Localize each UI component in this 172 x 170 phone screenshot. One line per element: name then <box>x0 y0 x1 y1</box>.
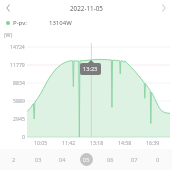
button[interactable]: 06 <box>98 149 122 170</box>
staticText: (W) <box>4 31 13 38</box>
staticText: 10:05 <box>34 139 48 146</box>
staticText: 14724 <box>10 43 25 50</box>
staticText: P-pv: <box>13 19 27 27</box>
staticText: 2945 <box>13 115 25 122</box>
button[interactable]: 05 <box>74 149 98 170</box>
staticText: 05 <box>83 156 90 164</box>
staticText: 5889 <box>13 97 25 104</box>
staticText: 07 <box>131 156 138 164</box>
staticText: 04 <box>59 156 66 164</box>
staticText: 2022-11-05 <box>70 4 103 13</box>
button[interactable]: Next day <box>156 0 172 16</box>
staticText: 8834 <box>13 79 25 86</box>
button[interactable]: 2 <box>2 149 26 170</box>
staticText: 0 <box>22 133 25 140</box>
staticText: 14:58 <box>118 139 132 146</box>
staticText: 03 <box>35 156 42 164</box>
button[interactable]: Previous day <box>0 0 16 16</box>
staticText: 11779 <box>10 61 25 68</box>
staticText: 2 <box>12 156 16 164</box>
button[interactable]: 03 <box>26 149 50 170</box>
button[interactable]: 07 <box>122 149 146 170</box>
button[interactable]: 0 <box>146 149 170 170</box>
staticText: 11:42 <box>62 139 76 146</box>
staticText: 13:23 <box>83 65 98 73</box>
staticText: 06 <box>107 156 114 164</box>
button[interactable]: 04 <box>50 149 74 170</box>
staticText: 13:18 <box>90 139 104 146</box>
staticText: 16:39 <box>146 139 160 146</box>
staticText: 0 <box>156 156 160 164</box>
staticText: 13104W <box>49 19 72 27</box>
